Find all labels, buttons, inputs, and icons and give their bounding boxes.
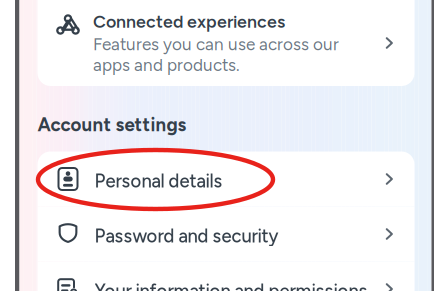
button[interactable]: Personal details [37,151,414,206]
staticText: Connected experiences [93,11,285,32]
button[interactable]: Your information and permissions [37,261,414,291]
staticText: Password and security [94,225,278,247]
staticText: apps and products. [93,55,240,75]
staticText: Features you can use across our [93,34,339,54]
button[interactable]: Connected experiences [37,0,414,86]
staticText: Personal details [94,170,222,192]
button[interactable]: Password and security [37,206,414,261]
staticText: Your information and permissions [94,280,367,291]
staticText: Account settings [37,113,186,136]
